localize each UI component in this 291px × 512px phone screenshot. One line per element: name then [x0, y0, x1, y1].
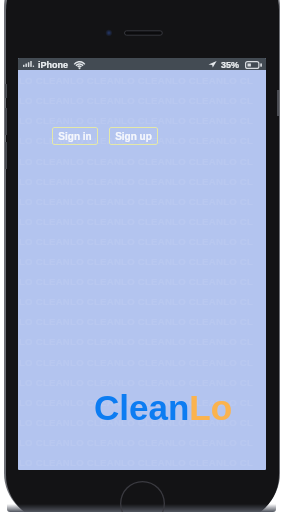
- staticText: LO CLEANLO CLEANLO CLEANLO CLEANLO CL: [19, 135, 254, 146]
- staticText: LO CLEANLO CLEANLO CLEANLO CLEANLO CL: [19, 58, 254, 66]
- staticText: LO CLEANLO CLEANLO CLEANLO CLEANLO CL: [19, 397, 254, 408]
- staticText: CleanLo: [94, 388, 233, 427]
- button[interactable]: Sign up: [109, 127, 158, 145]
- button[interactable]: Home: [120, 481, 165, 512]
- staticText: Sign in: [58, 131, 92, 142]
- staticText: 35%: [221, 60, 240, 70]
- staticText: LO CLEANLO CLEANLO CLEANLO CLEANLO CL: [19, 417, 254, 428]
- staticText: iPhone: [38, 60, 69, 70]
- other: Location active: [208, 60, 217, 68]
- button[interactable]: Sign in: [52, 127, 98, 145]
- staticText: Sign up: [115, 131, 152, 142]
